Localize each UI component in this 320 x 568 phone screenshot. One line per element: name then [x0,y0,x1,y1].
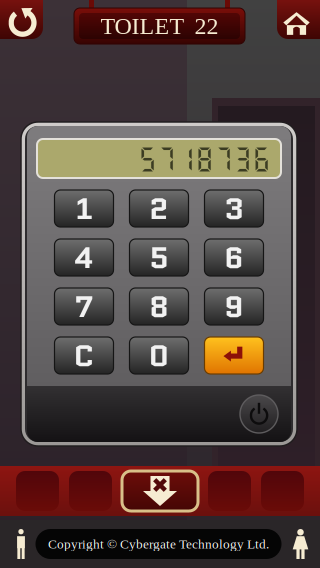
button[interactable]: Enter [204,337,263,374]
button[interactable]: 7 [54,288,113,325]
staticText: Copyright © Cybergate Technology Ltd. [48,537,269,551]
button[interactable]: Empty inventory slot [69,471,112,511]
button[interactable]: Empty inventory slot [208,471,251,511]
staticText: 5 [149,236,169,279]
button[interactable]: 2 [129,190,188,227]
staticText: 9 [224,285,244,328]
staticText: 5718736 [138,143,271,174]
button[interactable]: Empty inventory slot [261,471,304,511]
button[interactable]: 8 [129,288,188,325]
button[interactable]: 5 [129,239,188,276]
staticText: 7 [74,285,93,328]
button[interactable]: Empty inventory slot [16,471,59,511]
button[interactable]: Home [271,0,320,45]
staticText: C [73,334,94,377]
button[interactable]: TOILET 22 [74,8,245,44]
staticText: 2 [149,187,169,230]
button[interactable]: 0 [129,337,188,374]
staticText: 8 [149,285,169,328]
staticText: 4 [74,236,94,279]
button[interactable]: 6 [204,239,263,276]
staticText: 1 [75,187,93,230]
button[interactable]: C [54,337,113,374]
button[interactable]: Restart [0,0,49,45]
staticText: TOILET 22 [100,13,218,39]
button[interactable]: 3 [204,190,263,227]
button[interactable]: 4 [54,239,113,276]
button[interactable]: Item [122,471,198,511]
staticText: 6 [224,236,244,279]
staticText: 0 [148,334,169,377]
button[interactable]: 1 [54,190,113,227]
button[interactable]: Power [240,395,278,433]
button[interactable]: 9 [204,288,263,325]
staticText: 3 [224,187,244,230]
